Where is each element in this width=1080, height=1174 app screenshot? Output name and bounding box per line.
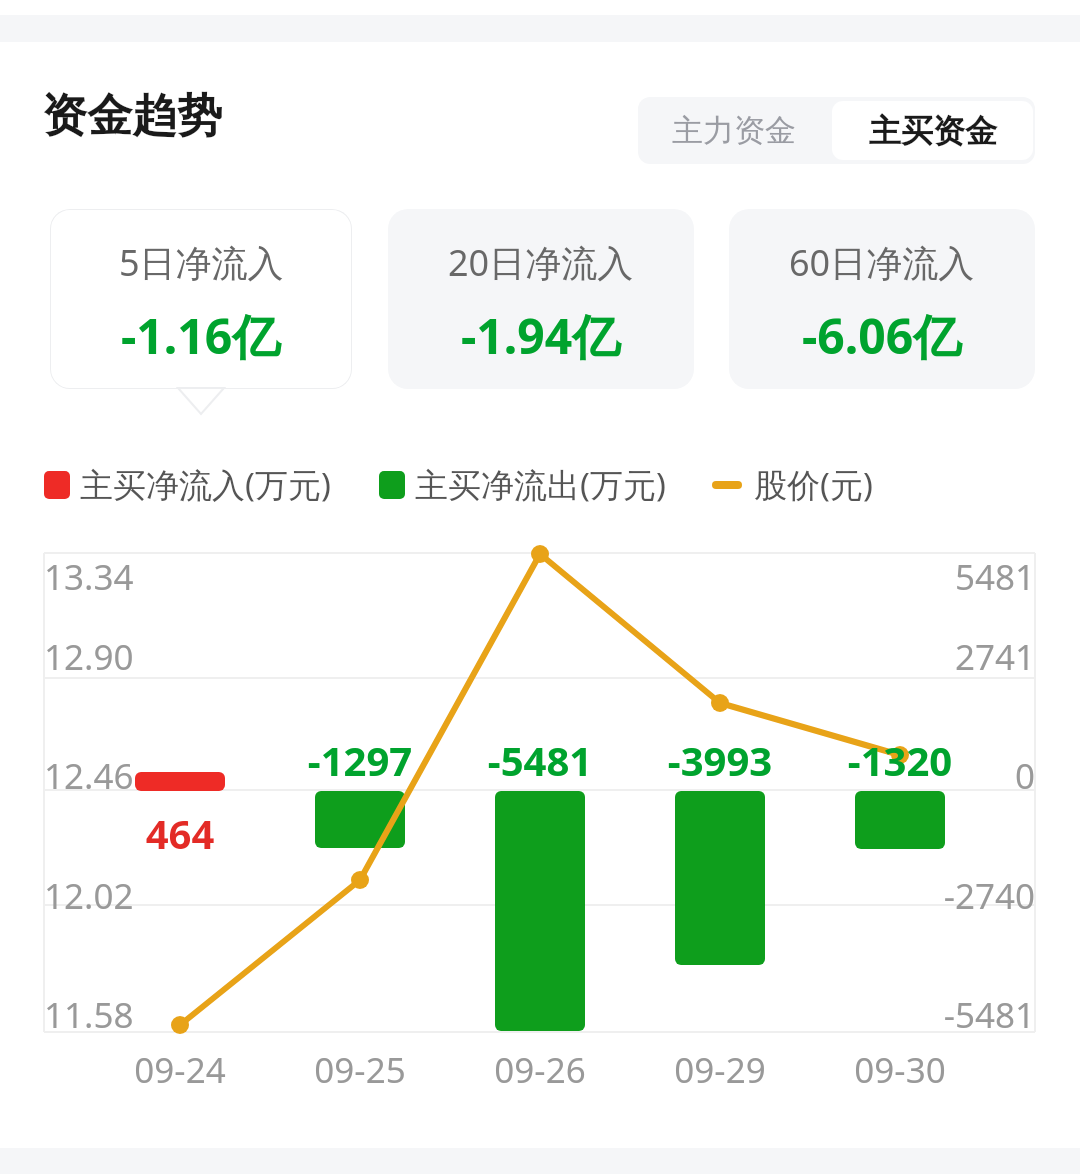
staticText: 11.58 [44,991,134,1039]
staticText: 60日净流入 [789,238,975,287]
staticText: 20日净流入 [448,238,634,287]
staticText: 资金趋势 [42,88,222,145]
staticText: 5日净流入 [119,238,284,287]
staticText: 主买净流入(万元) [80,462,331,507]
staticText: 主买资金 [869,111,997,151]
staticText: 2741 [795,633,1035,681]
staticText: -1.16亿 [121,303,281,369]
staticText: -1.94亿 [461,303,621,369]
staticText: -1320 [790,733,1010,787]
staticText: -3993 [610,733,830,787]
staticText: 464 [70,806,290,860]
staticText: 13.34 [44,553,134,601]
staticText: 12.46 [44,752,134,800]
staticText: 5481 [795,553,1035,601]
button[interactable]: 5日净流入 [50,209,352,389]
staticText: 股价(元) [754,462,873,507]
staticText: 09-30 [810,1046,990,1094]
staticText: 12.02 [44,872,134,920]
button[interactable]: 20日净流入 [388,209,694,389]
staticText: 12.90 [44,633,134,681]
button[interactable]: 主买资金 [832,101,1033,160]
staticText: 0 [795,752,1035,800]
staticText: 09-24 [90,1046,270,1094]
button[interactable]: 主力资金 [638,97,830,164]
staticText: -2740 [795,872,1035,920]
staticText: 主力资金 [672,111,796,150]
staticText: -6.06亿 [802,303,962,369]
staticText: 09-29 [630,1046,810,1094]
staticText: -5481 [795,991,1035,1039]
staticText: 09-26 [450,1046,630,1094]
button[interactable]: 60日净流入 [729,209,1035,389]
staticText: -1297 [250,733,470,787]
staticText: -5481 [430,733,650,787]
staticText: 09-25 [270,1046,450,1094]
staticText: 主买净流出(万元) [415,462,666,507]
